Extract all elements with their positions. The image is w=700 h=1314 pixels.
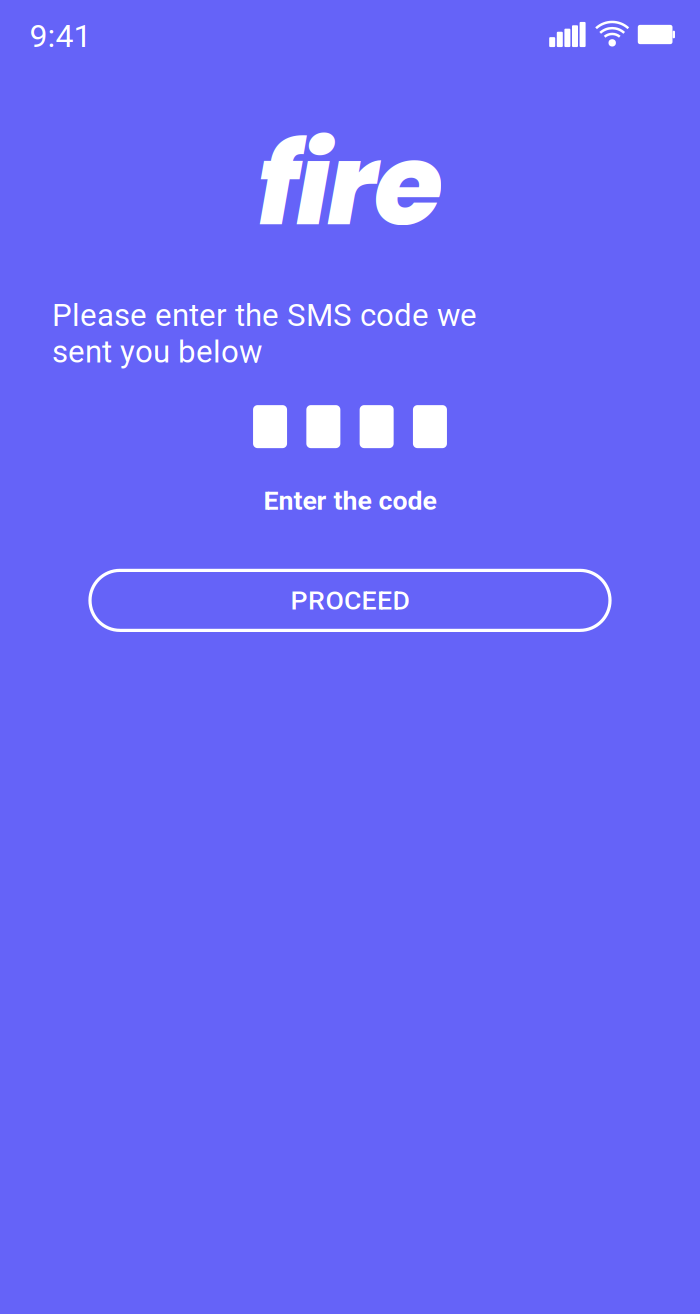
staticText: Enter the code <box>263 485 436 516</box>
button[interactable]: SMS code field <box>253 405 447 448</box>
staticText: fire <box>257 107 443 263</box>
staticText: PROCEED <box>290 585 409 616</box>
staticText: Please enter the SMS code we sent you be… <box>52 297 477 370</box>
button[interactable]: PROCEED <box>90 570 610 630</box>
staticText: 9:41 <box>29 17 91 55</box>
